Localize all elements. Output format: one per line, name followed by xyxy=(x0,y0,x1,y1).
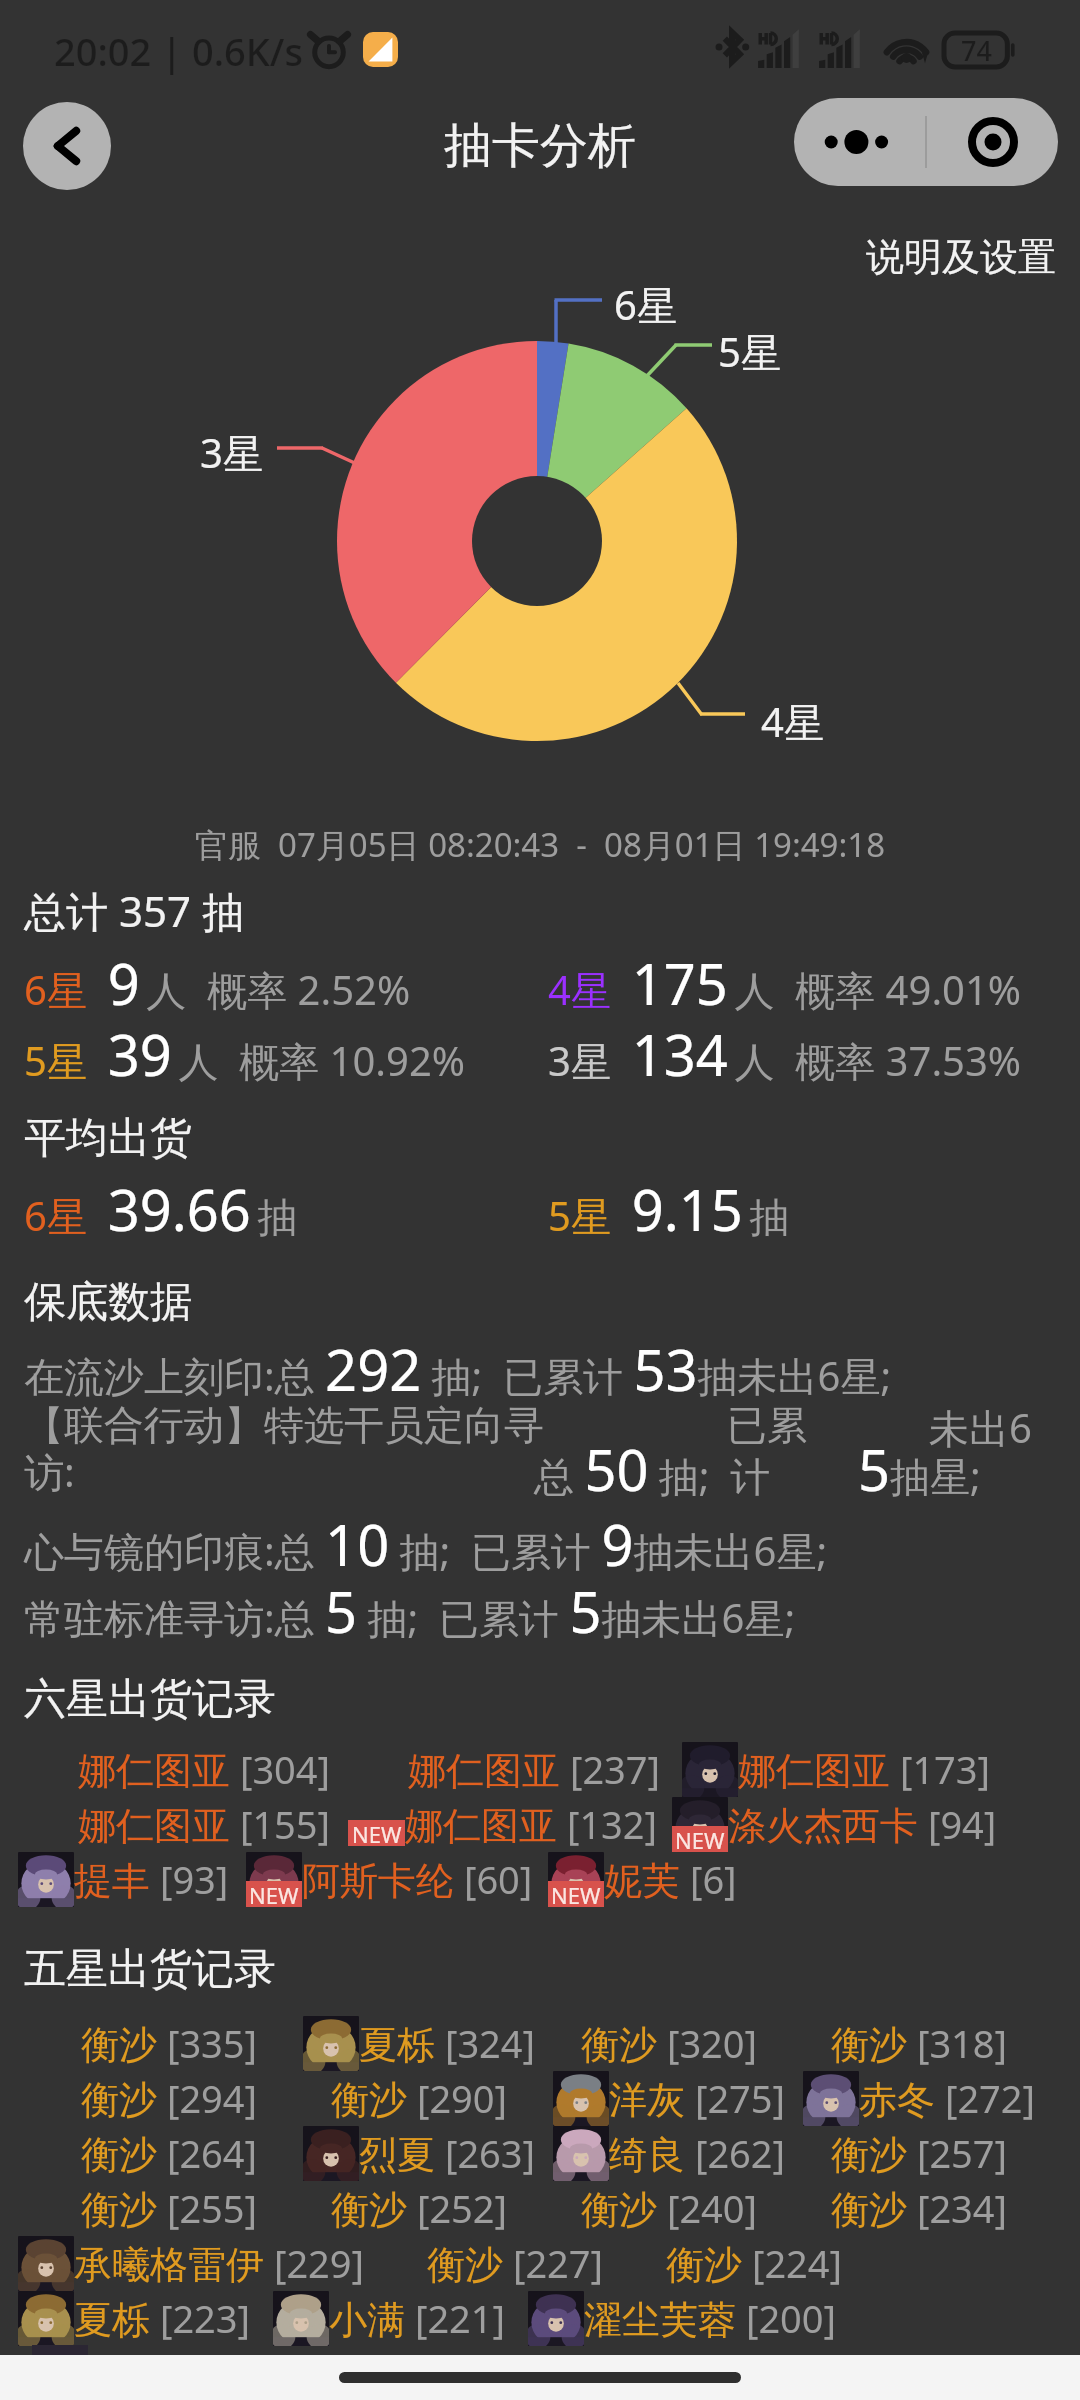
staticText: 总 50 抽; 计 xyxy=(534,1431,771,1507)
staticText: 官服 07月05日 08:20:43 - 08月01日 19:49:18 xyxy=(0,822,1080,867)
staticText: 5星 9.15 抽 xyxy=(548,1171,790,1247)
staticText: 娜仁图亚 [173] xyxy=(738,1743,991,1795)
button[interactable]: More options xyxy=(794,98,925,186)
button[interactable]: 赤冬 [272] xyxy=(803,2071,1036,2126)
staticText: 在流沙上刻印:总 292 抽; 已累计 53抽未出6星; xyxy=(24,1331,892,1407)
staticText: 夏栎 [223] xyxy=(74,2292,251,2344)
button[interactable]: 衡沙 [227] xyxy=(427,2236,604,2291)
staticText: 衡沙 [234] xyxy=(831,2182,1008,2234)
staticText: 六星出货记录 xyxy=(24,1673,276,1726)
staticText: 衡沙 [255] xyxy=(81,2182,258,2234)
staticText: 6星 xyxy=(614,277,677,332)
staticText: 3星 xyxy=(200,425,263,480)
staticText: 5星 xyxy=(718,324,781,379)
staticText: 访: xyxy=(24,1444,75,1499)
button[interactable]: NEW xyxy=(672,1797,997,1852)
staticText: 抽卡分析 xyxy=(444,116,636,176)
button[interactable]: 衡沙 [257] xyxy=(831,2126,1008,2181)
staticText: 5抽星; xyxy=(858,1431,981,1507)
button[interactable]: NEW xyxy=(548,1852,737,1907)
staticText: 小满 [221] xyxy=(329,2292,506,2344)
staticText: 衡沙 [252] xyxy=(331,2182,508,2234)
button[interactable]: Back xyxy=(23,102,111,190)
staticText: 阿斯卡纶 [60] xyxy=(302,1853,533,1905)
button[interactable]: 衡沙 [224] xyxy=(666,2236,843,2291)
staticText: 6星 39.66 抽 xyxy=(24,1171,298,1247)
staticText: 未出6 xyxy=(929,1400,1032,1455)
staticText: 承曦格雷伊 [229] xyxy=(74,2237,365,2289)
button[interactable]: 承曦格雷伊 [229] xyxy=(18,2236,365,2291)
staticText: 20:02 | 0.6K/s xyxy=(54,25,303,77)
staticText: 娜仁图亚 [155] xyxy=(78,1798,331,1850)
button[interactable]: NEW xyxy=(348,1797,658,1852)
button[interactable]: 说明及设置 xyxy=(850,221,1072,293)
staticText: 总计 357 抽 xyxy=(24,882,244,939)
staticText: 平均出货 xyxy=(24,1112,192,1165)
button[interactable]: Close mini program xyxy=(927,98,1058,186)
staticText: 娜仁图亚 [304] xyxy=(78,1743,331,1795)
staticText: 娜仁图亚 [132] xyxy=(405,1798,658,1850)
staticText: NEW xyxy=(352,1819,402,1845)
staticText: 已累 xyxy=(727,1400,807,1450)
staticText: NEW xyxy=(249,1880,299,1906)
staticText: 常驻标准寻访:总 5 抽; 已累计 5抽未出6星; xyxy=(24,1573,796,1649)
staticText: 衡沙 [224] xyxy=(666,2237,843,2289)
staticText: 6星 9 人 概率 2.52% xyxy=(24,945,411,1021)
staticText: 洋灰 [275] xyxy=(609,2072,786,2124)
button[interactable]: 娜仁图亚 [237] xyxy=(408,1742,661,1797)
button[interactable]: 娜仁图亚 [155] xyxy=(78,1797,331,1852)
staticText: 妮芙 [6] xyxy=(604,1853,737,1905)
staticText: 74 xyxy=(961,32,992,66)
button[interactable]: 绮良 [262] xyxy=(553,2126,786,2181)
staticText: 五星出货记录 xyxy=(24,1943,276,1996)
staticText: 心与镜的印痕:总 10 抽; 已累计 9抽未出6星; xyxy=(24,1506,828,1582)
staticText: 衡沙 [290] xyxy=(331,2072,508,2124)
button[interactable]: 提丰 [93] xyxy=(18,1852,229,1907)
button[interactable]: 衡沙 [318] xyxy=(831,2016,1008,2071)
staticText: 涤火杰西卡 [94] xyxy=(728,1798,997,1850)
button[interactable]: 衡沙 [240] xyxy=(581,2181,758,2236)
staticText: 衡沙 [264] xyxy=(81,2127,258,2179)
button[interactable]: 娜仁图亚 [304] xyxy=(78,1742,331,1797)
staticText: 赤冬 [272] xyxy=(859,2072,1036,2124)
button[interactable]: 衡沙 [255] xyxy=(81,2181,258,2236)
button[interactable]: 夏栎 [223] xyxy=(18,2291,251,2346)
staticText: 5星 39 人 概率 10.92% xyxy=(24,1016,466,1092)
button[interactable]: NEW xyxy=(246,1852,533,1907)
button[interactable]: 小满 [221] xyxy=(273,2291,506,2346)
button[interactable]: 濯尘芙蓉 [200] xyxy=(528,2291,837,2346)
button[interactable]: 夏栎 [324] xyxy=(303,2016,536,2071)
button[interactable]: 衡沙 [264] xyxy=(81,2126,258,2181)
staticText: 提丰 [93] xyxy=(74,1853,229,1905)
button[interactable]: 衡沙 [320] xyxy=(581,2016,758,2071)
staticText: 衡沙 [335] xyxy=(81,2017,258,2069)
button[interactable]: 衡沙 [234] xyxy=(831,2181,1008,2236)
staticText: NEW xyxy=(551,1880,601,1906)
staticText: 3星 134 人 概率 37.53% xyxy=(548,1016,1022,1092)
button[interactable]: 衡沙 [335] xyxy=(81,2016,258,2071)
staticText: 衡沙 [294] xyxy=(81,2072,258,2124)
staticText: 说明及设置 xyxy=(866,233,1056,281)
staticText: 烈夏 [263] xyxy=(359,2127,536,2179)
staticText: 衡沙 [257] xyxy=(831,2127,1008,2179)
staticText: 保底数据 xyxy=(24,1276,192,1329)
button[interactable]: 衡沙 [252] xyxy=(331,2181,508,2236)
staticText: 4星 175 人 概率 49.01% xyxy=(548,945,1022,1021)
button[interactable]: 娜仁图亚 [173] xyxy=(682,1742,991,1797)
staticText: 绮良 [262] xyxy=(609,2127,786,2179)
staticText: 衡沙 [318] xyxy=(831,2017,1008,2069)
staticText: NEW xyxy=(675,1825,725,1851)
button[interactable]: 衡沙 [290] xyxy=(331,2071,508,2126)
staticText: 衡沙 [240] xyxy=(581,2182,758,2234)
staticText: 濯尘芙蓉 [200] xyxy=(584,2292,837,2344)
staticText: 4星 xyxy=(761,694,824,749)
staticText: 衡沙 [320] xyxy=(581,2017,758,2069)
staticText: 【联合行动】特选干员定向寻 xyxy=(24,1400,544,1450)
button[interactable]: 衡沙 [294] xyxy=(81,2071,258,2126)
staticText: 夏栎 [324] xyxy=(359,2017,536,2069)
staticText: 娜仁图亚 [237] xyxy=(408,1743,661,1795)
button[interactable]: 洋灰 [275] xyxy=(553,2071,786,2126)
button[interactable]: 烈夏 [263] xyxy=(303,2126,536,2181)
staticText: 衡沙 [227] xyxy=(427,2237,604,2289)
